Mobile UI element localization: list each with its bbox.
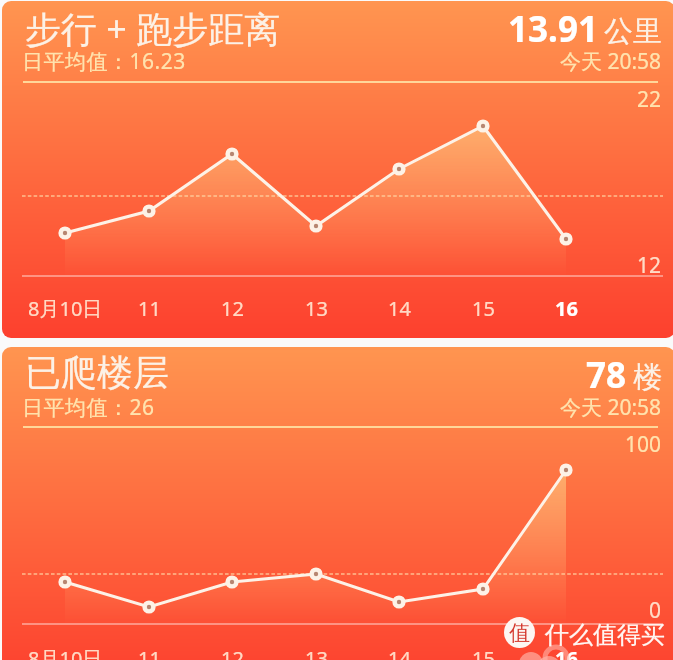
button[interactable]: 值得买 (504, 617, 665, 648)
staticText: 13.91 (508, 5, 598, 53)
staticText: 11 (138, 295, 161, 322)
staticText: 值 (509, 620, 530, 646)
staticText: 11 (138, 645, 161, 660)
staticText: 13 (305, 295, 328, 322)
staticText: 16 (555, 645, 578, 660)
other: 值得买 (504, 617, 535, 648)
staticText: 公里 (604, 13, 662, 50)
staticText: 22 (637, 85, 662, 114)
staticText: 今天 20:58 (560, 47, 662, 76)
staticText: 100 (625, 430, 662, 459)
staticText: 日平均值：26 (22, 393, 155, 422)
staticText: 0 (649, 596, 662, 625)
staticText: 15 (472, 295, 495, 322)
staticText: 78 (586, 351, 627, 399)
staticText: 日平均值：16.23 (22, 47, 186, 76)
staticText: 今天 20:58 (560, 393, 662, 422)
staticText: 13 (305, 645, 328, 660)
staticText: 8月10日 (28, 645, 103, 660)
staticText: 楼 (633, 359, 662, 396)
staticText: 8月10日 (28, 295, 103, 322)
staticText: 步行 + 跑步距离 (25, 4, 281, 53)
staticText: 什么值得买 (545, 620, 665, 650)
button[interactable]: 已爬楼层 (2, 347, 673, 660)
staticText: 16 (555, 295, 578, 322)
staticText: 14 (388, 295, 411, 322)
button[interactable]: 步行 + 跑步距离 (2, 1, 673, 338)
staticText: 已爬楼层 (25, 350, 169, 395)
staticText: 15 (472, 645, 495, 660)
staticText: 12 (221, 645, 244, 660)
staticText: 14 (388, 645, 411, 660)
staticText: 12 (221, 295, 244, 322)
staticText: 12 (637, 251, 662, 280)
